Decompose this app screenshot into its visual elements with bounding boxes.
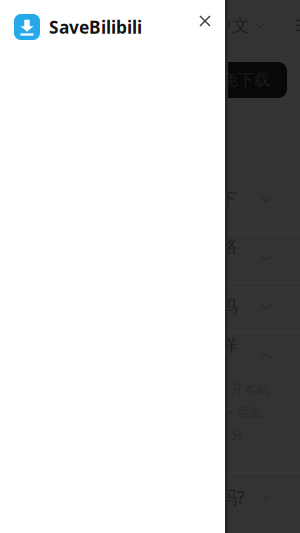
button[interactable]: 立即开始解析下载高清视频免下载: [13, 62, 287, 98]
staticText: 中文: [215, 15, 249, 36]
button[interactable]: 下载服务是完全免费使用的吗?: [0, 473, 300, 521]
staticText: 支持哪些视频清晰度和文件格式?: [16, 236, 237, 280]
button[interactable]: Menu: [296, 19, 300, 31]
staticText: 具体的下载步骤究竟是什么样的: [16, 335, 237, 377]
button[interactable]: Close menu: [192, 8, 218, 34]
staticText: SaveBilibili: [49, 15, 142, 38]
staticText: 手机里离线观看并随时重新下载: [16, 189, 237, 231]
button[interactable]: 怎么把网页上的视频保存到: [0, 167, 300, 233]
staticText: 2. 复制视频链接粘贴到输入框 → 点击: [46, 403, 262, 420]
button[interactable]: 需要安装应用或者注册账号吗: [0, 283, 300, 331]
button[interactable]: 中文: [207, 10, 272, 40]
staticText: 3. 一般情况下只需要等待大约一分: [46, 425, 243, 443]
staticText: 立即开始解析下载高清视频免下载: [30, 70, 270, 90]
staticText: 需要安装应用或者注册账号吗: [16, 296, 237, 318]
button[interactable]: 支持哪些视频清晰度和文件格式?: [0, 234, 300, 282]
staticText: 1. 在电脑或者手机上用浏览器打开本站: [46, 380, 269, 398]
staticText: 下载服务是完全免费使用的吗?: [16, 486, 245, 509]
button[interactable]: 具体的下载步骤究竟是什么样的: [0, 332, 300, 380]
